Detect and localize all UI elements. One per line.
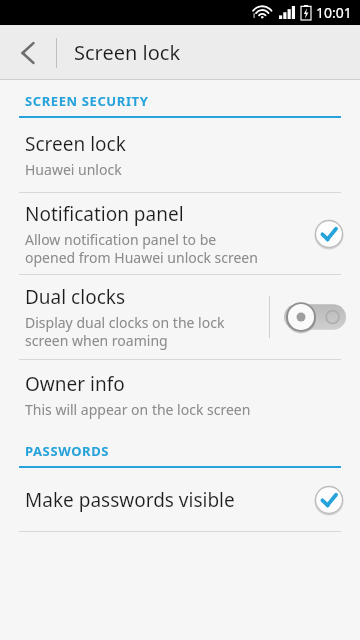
staticText: 10:01 [316, 3, 352, 22]
staticText: Screen lock [25, 131, 126, 157]
staticText: Screen lock [74, 39, 181, 66]
button[interactable]: Screen lock [0, 118, 360, 192]
button[interactable]: Enabled [312, 483, 346, 517]
button[interactable]: Dual clocks, off [284, 301, 346, 333]
staticText: SCREEN SECURITY [25, 92, 149, 110]
staticText: Dual clocks [25, 284, 125, 310]
staticText: Owner info [25, 371, 125, 397]
button[interactable]: Dual clocks [0, 275, 360, 359]
staticText: This will appear on the lock screen [25, 400, 251, 419]
staticText: Huawei unlock [25, 160, 122, 179]
staticText: Display dual clocks on the lock screen w… [25, 313, 225, 350]
button[interactable]: Notification panel [0, 193, 360, 274]
button[interactable]: Make passwords visible [0, 468, 360, 531]
staticText: Make passwords visible [25, 487, 235, 513]
button[interactable]: Back [0, 25, 56, 80]
staticText: Allow notification panel to be opened fr… [25, 230, 258, 267]
staticText: Notification panel [25, 201, 184, 227]
staticText: PASSWORDS [25, 442, 110, 460]
button[interactable]: Enabled [312, 217, 346, 251]
button[interactable]: Owner info [0, 360, 360, 430]
